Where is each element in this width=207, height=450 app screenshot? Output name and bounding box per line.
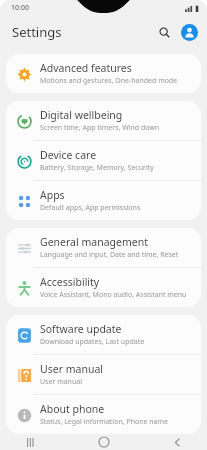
staticText: General management [40, 235, 148, 249]
staticText: Advanced features [40, 61, 132, 75]
staticText: Status, Legal information, Phone name [40, 417, 169, 427]
button[interactable]: Account [178, 21, 200, 43]
staticText: Default apps, App permissions [40, 203, 141, 213]
button[interactable]: Search [153, 21, 175, 43]
staticText: Settings [12, 23, 62, 41]
staticText: Screen time, App timers, Wind down [40, 123, 160, 133]
staticText: Accessibility [40, 275, 100, 289]
button[interactable]: Accessibility [6, 268, 201, 307]
button[interactable]: Device care [6, 141, 201, 180]
staticText: User manual [40, 377, 82, 387]
staticText: User manual [40, 362, 103, 376]
staticText: Motions and gestures, One-handed mode [40, 76, 178, 86]
staticText: Voice Assistant, Mono audio, Assistant m… [40, 290, 187, 300]
button[interactable]: User manual [6, 355, 201, 394]
button[interactable]: Software update [6, 315, 201, 354]
button[interactable]: Advanced features [6, 54, 201, 93]
staticText: Battery, Storage, Memory, Security [40, 163, 154, 173]
staticText: Device care [40, 148, 97, 162]
staticText: Apps [40, 188, 65, 202]
staticText: Download updates, Last update [40, 337, 145, 347]
button[interactable]: Back [163, 434, 191, 450]
button[interactable]: Home [90, 434, 118, 450]
staticText: About phone [40, 402, 105, 416]
staticText: Digital wellbeing [40, 108, 123, 122]
button[interactable]: Digital wellbeing [6, 101, 201, 140]
button[interactable]: Recent apps [16, 434, 44, 450]
staticText: Software update [40, 322, 122, 336]
button[interactable]: About phone [6, 395, 201, 434]
button[interactable]: Apps [6, 181, 201, 220]
staticText: Language and input, Date and time, Reset [40, 250, 179, 260]
button[interactable]: General management [6, 228, 201, 267]
staticText: 10:00 [11, 3, 29, 13]
